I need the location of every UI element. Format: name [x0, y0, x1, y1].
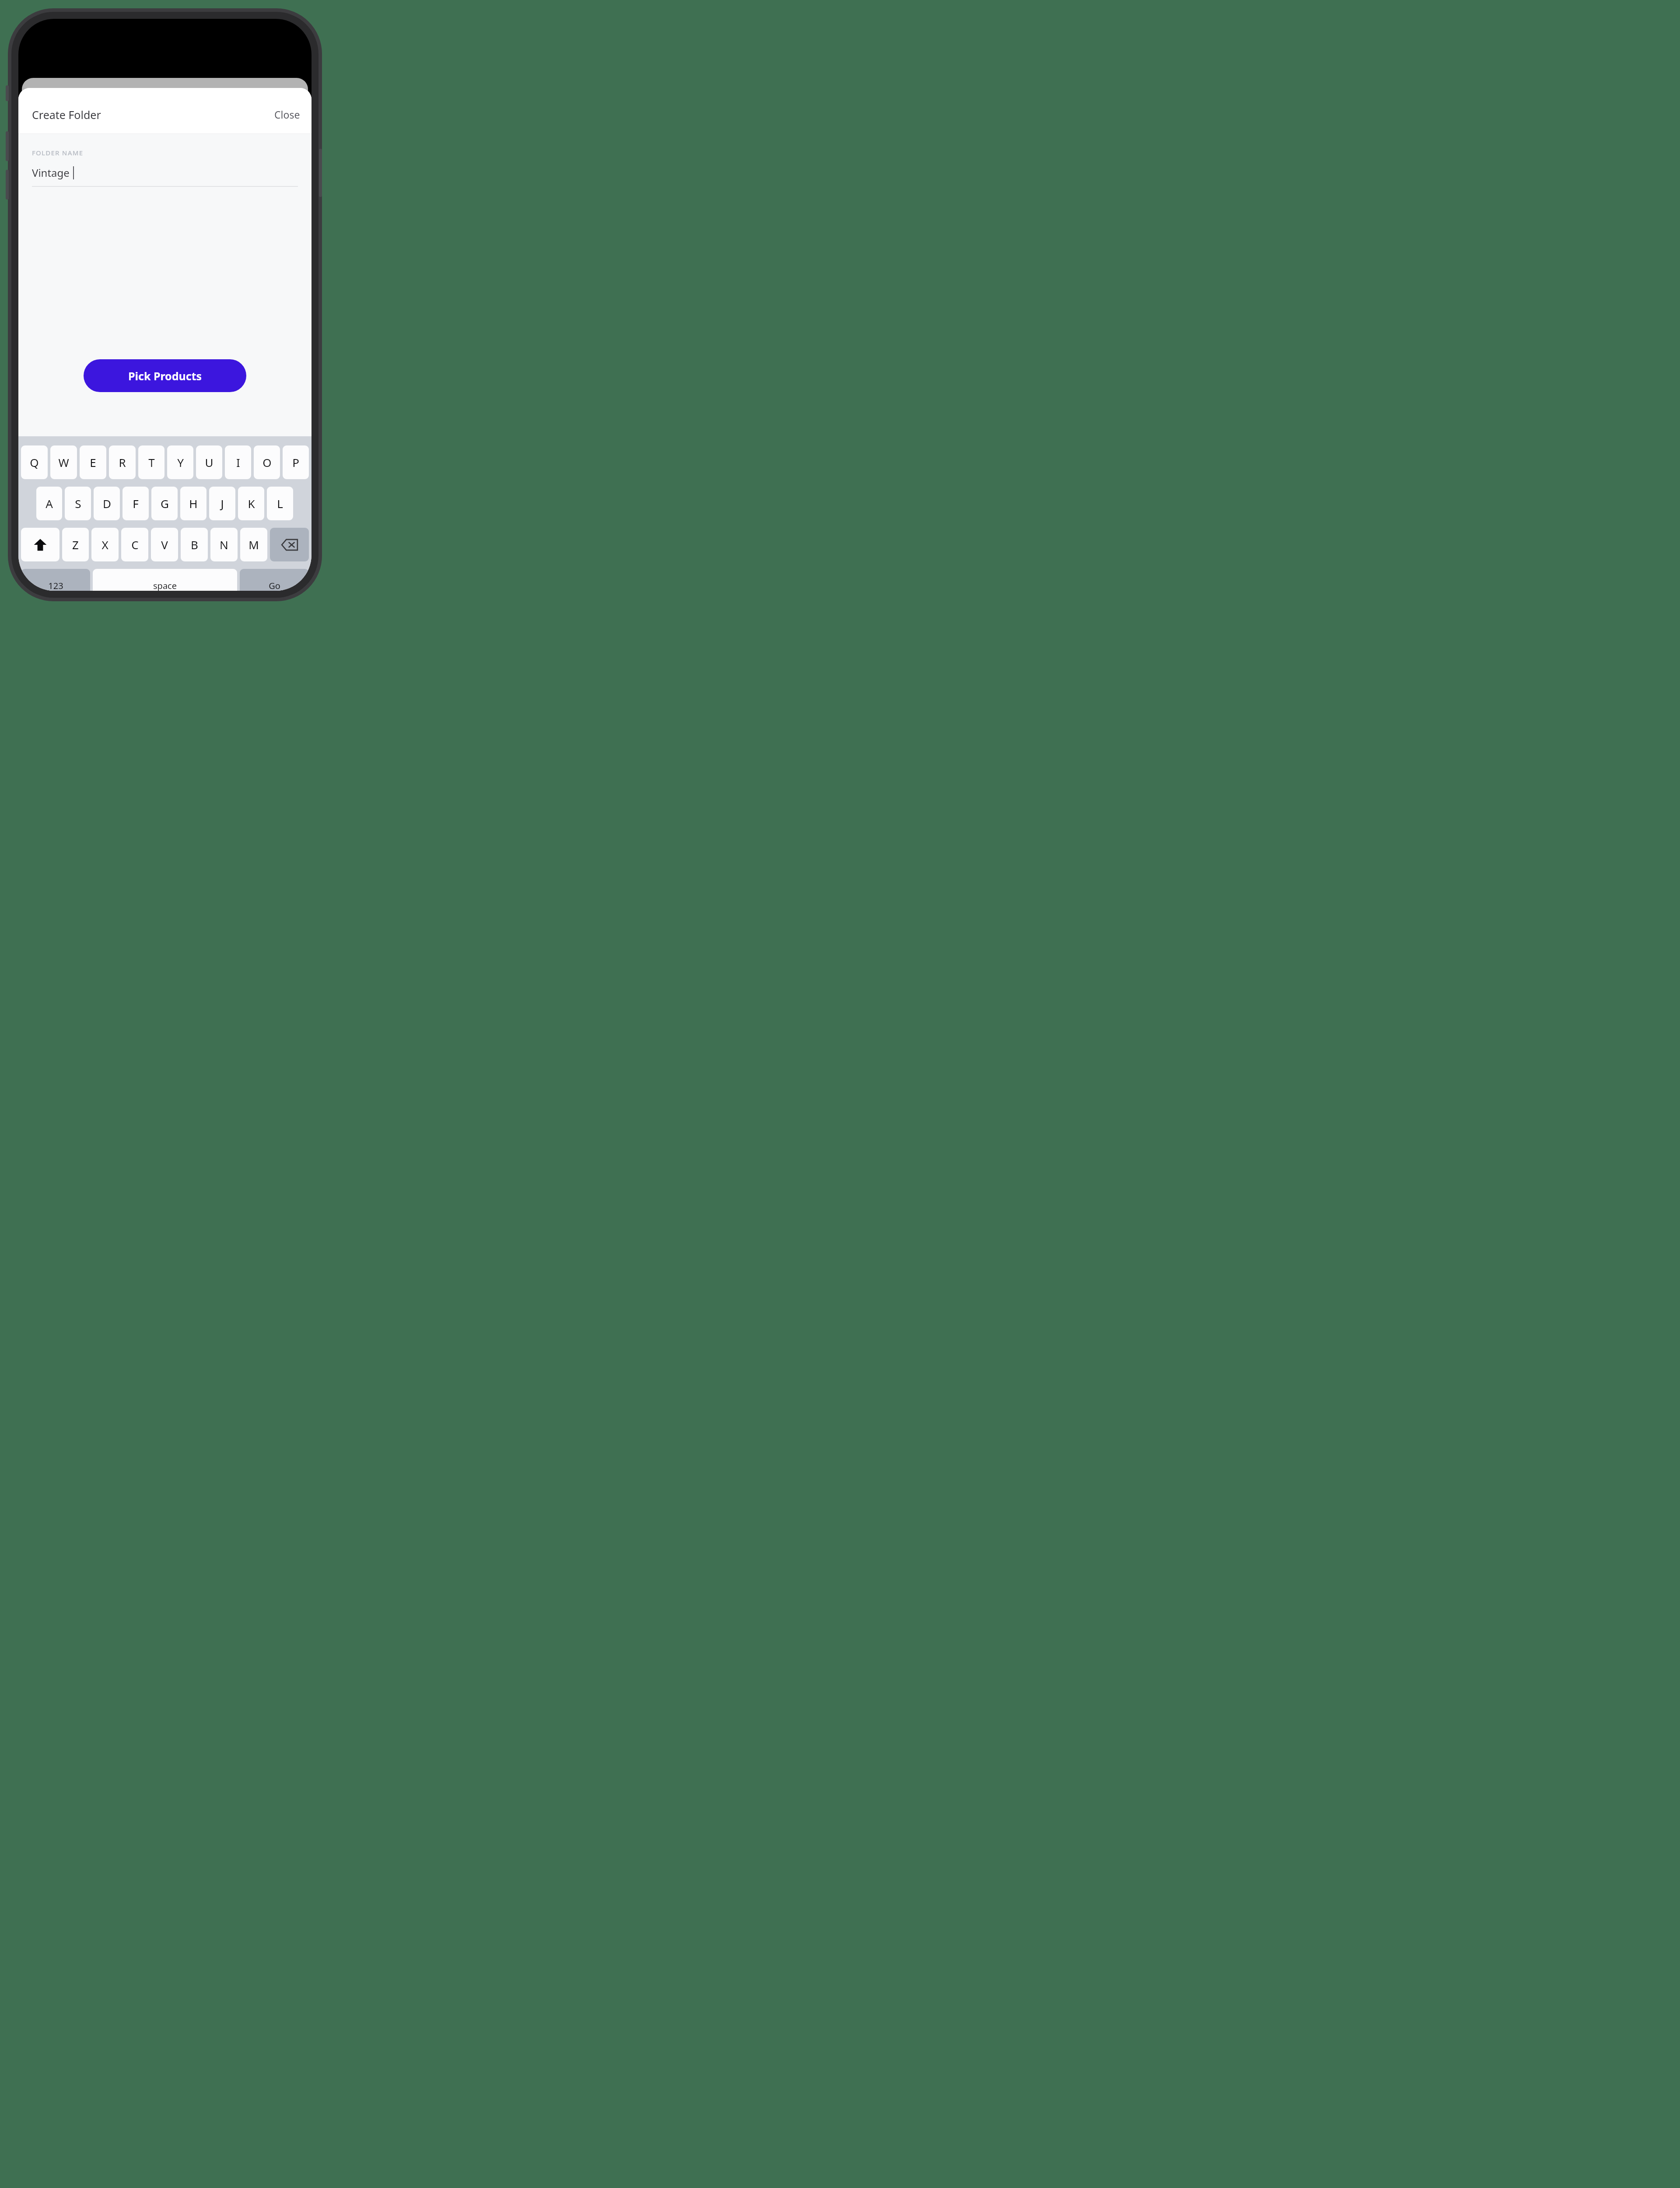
button[interactable]: Y: [167, 445, 193, 479]
button[interactable]: L: [267, 487, 293, 520]
staticText: H: [189, 496, 198, 511]
button[interactable]: I: [225, 445, 251, 479]
staticText: F: [133, 496, 139, 511]
button[interactable]: B: [181, 528, 208, 561]
button[interactable]: Q: [21, 445, 48, 479]
staticText: N: [220, 537, 228, 552]
button[interactable]: V: [151, 528, 178, 561]
staticText: P: [292, 455, 299, 470]
staticText: X: [101, 537, 108, 552]
staticText: S: [75, 496, 81, 511]
button[interactable]: U: [196, 445, 222, 479]
staticText: Pick Products: [128, 368, 202, 383]
button[interactable]: O: [254, 445, 280, 479]
staticText: D: [103, 496, 111, 511]
button[interactable]: Backspace: [270, 528, 309, 561]
button[interactable]: C: [121, 528, 148, 561]
button[interactable]: 123: [21, 569, 90, 591]
staticText: Vintage: [32, 165, 70, 180]
button[interactable]: G: [151, 487, 178, 520]
staticText: J: [220, 496, 224, 511]
staticText: I: [236, 455, 240, 470]
button[interactable]: Shift: [21, 528, 59, 561]
staticText: K: [248, 496, 255, 511]
button[interactable]: Z: [62, 528, 89, 561]
button[interactable]: W: [50, 445, 77, 479]
staticText: G: [161, 496, 169, 511]
staticText: B: [191, 537, 198, 552]
button[interactable]: D: [94, 487, 120, 520]
button[interactable]: X: [91, 528, 119, 561]
button[interactable]: K: [238, 487, 264, 520]
button[interactable]: F: [122, 487, 149, 520]
button[interactable]: H: [180, 487, 206, 520]
staticText: 123: [48, 580, 63, 591]
staticText: T: [148, 455, 155, 470]
button[interactable]: N: [210, 528, 238, 561]
staticText: A: [45, 496, 53, 511]
button[interactable]: M: [240, 528, 267, 561]
staticText: C: [131, 537, 139, 552]
staticText: L: [277, 496, 283, 511]
button[interactable]: Go: [240, 569, 309, 591]
staticText: Create Folder: [32, 107, 101, 122]
staticText: V: [161, 537, 168, 552]
button[interactable]: E: [80, 445, 106, 479]
staticText: space: [153, 580, 177, 591]
button[interactable]: T: [138, 445, 164, 479]
button[interactable]: P: [283, 445, 309, 479]
button[interactable]: Pick Products: [84, 359, 246, 392]
staticText: Go: [269, 580, 280, 591]
button[interactable]: A: [36, 487, 62, 520]
staticText: Q: [30, 455, 39, 470]
button[interactable]: S: [65, 487, 91, 520]
button[interactable]: Vintage: [32, 165, 298, 180]
staticText: O: [262, 455, 272, 470]
button[interactable]: J: [209, 487, 235, 520]
button[interactable]: space: [93, 569, 237, 591]
staticText: Close: [274, 108, 300, 121]
staticText: FOLDER NAME: [32, 148, 84, 157]
staticText: M: [248, 537, 259, 552]
staticText: R: [119, 455, 126, 470]
staticText: Y: [177, 455, 184, 470]
staticText: U: [205, 455, 213, 470]
button[interactable]: Close: [263, 102, 311, 126]
staticText: Z: [72, 537, 79, 552]
button[interactable]: R: [109, 445, 136, 479]
staticText: E: [90, 455, 96, 470]
staticText: W: [58, 455, 69, 470]
